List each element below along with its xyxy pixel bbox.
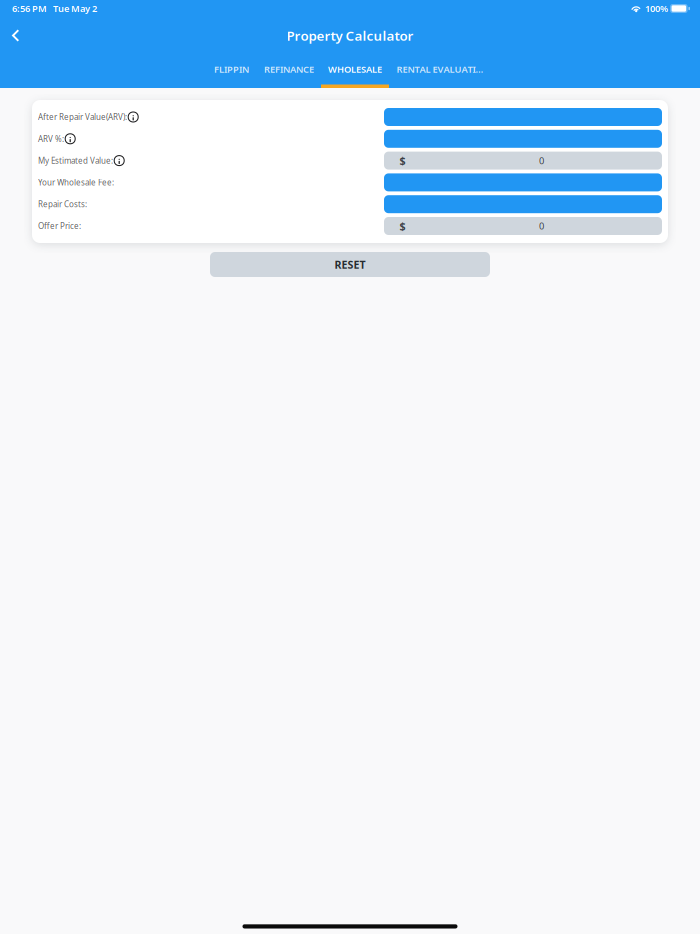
staticText: $	[399, 219, 405, 233]
staticText: 0	[539, 154, 544, 167]
button[interactable]: Repair Costs:	[384, 195, 662, 213]
staticText: RENTAL EVALUATION	[396, 63, 486, 75]
button[interactable]: Offer Price:	[384, 217, 662, 235]
staticText: 100%	[645, 2, 668, 15]
button[interactable]: More info about After Repair Value(ARV):	[128, 112, 138, 122]
staticText: Tue May 2	[53, 2, 97, 15]
button[interactable]: More info about ARV %:	[65, 134, 75, 144]
staticText: 6:56 PM	[12, 2, 47, 15]
staticText: $	[399, 153, 405, 168]
staticText: Property Calculator	[286, 27, 413, 44]
staticText: Repair Costs:	[38, 199, 87, 209]
button[interactable]: Back	[3, 20, 29, 50]
staticText: RESET	[334, 257, 365, 272]
button[interactable]: More info about My Estimated Value:	[114, 156, 124, 166]
button[interactable]: Your Wholesale Fee:	[384, 173, 662, 191]
staticText: WHOLESALE	[328, 63, 382, 75]
staticText: After Repair Value(ARV):	[38, 112, 127, 122]
staticText: Offer Price:	[38, 221, 81, 231]
staticText: 0	[539, 220, 544, 232]
button[interactable]: ARV %:	[384, 130, 662, 148]
staticText: Your Wholesale Fee:	[38, 177, 114, 188]
button[interactable]: After Repair Value(ARV):	[384, 108, 662, 126]
button[interactable]: WHOLESALE	[327, 54, 382, 88]
staticText: FLIPPIN	[214, 63, 249, 75]
button[interactable]: My Estimated Value:	[384, 152, 662, 170]
button[interactable]: RENTAL EVALUATION	[396, 54, 486, 88]
staticText: My Estimated Value:	[38, 155, 113, 166]
button[interactable]: FLIPPIN	[213, 54, 249, 88]
staticText: ARV %:	[38, 133, 64, 144]
button[interactable]: REFINANCE	[263, 54, 314, 88]
button[interactable]: RESET	[210, 252, 490, 277]
staticText: REFINANCE	[264, 63, 314, 75]
